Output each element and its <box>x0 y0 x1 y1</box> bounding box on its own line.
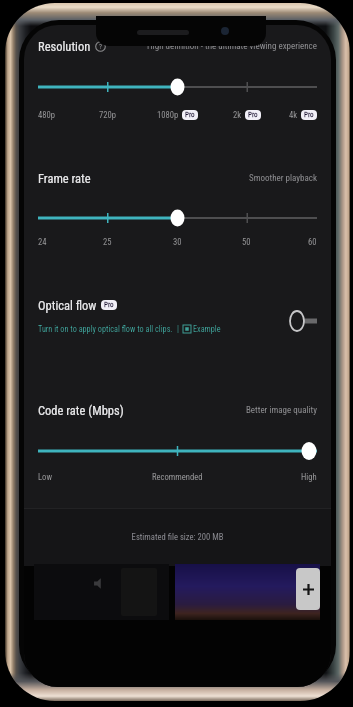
staticText: Low <box>38 472 52 482</box>
staticText: 1080p <box>157 110 179 120</box>
button[interactable]: Help <box>95 41 106 52</box>
staticText: Frame rate <box>38 171 91 186</box>
staticText: 60 <box>308 237 317 247</box>
staticText: High <box>301 472 317 482</box>
staticText: | <box>177 324 179 334</box>
button[interactable] <box>24 77 331 97</box>
staticText: Smoother playback <box>249 173 317 184</box>
staticText: 25 <box>103 237 112 247</box>
button[interactable] <box>24 208 331 228</box>
staticText: Recommended <box>152 472 203 482</box>
staticText: High definition - the ultimate viewing e… <box>147 41 317 52</box>
button[interactable] <box>24 441 331 461</box>
staticText: Pro <box>304 111 314 119</box>
staticText: 2k <box>233 110 242 120</box>
staticText: 480p <box>38 110 55 120</box>
staticText: Code rate (Mbps) <box>38 403 124 418</box>
staticText: Pro <box>185 111 195 119</box>
staticText: Pro <box>104 301 114 309</box>
staticText: 30 <box>173 237 182 247</box>
button[interactable]: Mute <box>90 574 108 592</box>
staticText: Example <box>193 324 221 334</box>
staticText: 50 <box>242 237 251 247</box>
staticText: Turn it on to apply optical flow to all … <box>38 324 173 334</box>
staticText: Pro <box>248 111 258 119</box>
staticText: 720p <box>99 110 116 120</box>
staticText: Optical flow <box>38 298 97 313</box>
staticText: 4k <box>289 110 298 120</box>
button[interactable]: Optical flow toggle <box>290 308 322 334</box>
staticText: ? <box>99 43 102 51</box>
staticText: Better image quality <box>245 405 317 416</box>
staticText: 24 <box>38 237 47 247</box>
button[interactable]: Add clip <box>296 568 320 610</box>
staticText: Resolution <box>38 39 91 54</box>
staticText: Estimated file size: 200 MB <box>24 532 331 542</box>
